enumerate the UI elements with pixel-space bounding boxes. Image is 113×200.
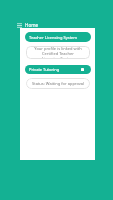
button[interactable]: Status: Waiting for approval bbox=[26, 78, 90, 89]
button[interactable]: Your profile is linked with Certified Te… bbox=[26, 46, 90, 59]
other: Info bbox=[81, 68, 84, 71]
staticText: Private Tutoring bbox=[29, 67, 60, 72]
staticText: Your profile is linked with Certified Te… bbox=[27, 46, 89, 59]
staticText: Home bbox=[25, 22, 39, 28]
staticText: Teacher Licensing System bbox=[29, 35, 78, 40]
staticText: Status: Waiting for approval bbox=[32, 81, 85, 86]
button[interactable]: Menu bbox=[14, 20, 24, 30]
button[interactable]: Teacher Licensing System bbox=[25, 32, 91, 42]
button[interactable]: Private Tutoring bbox=[25, 65, 91, 74]
